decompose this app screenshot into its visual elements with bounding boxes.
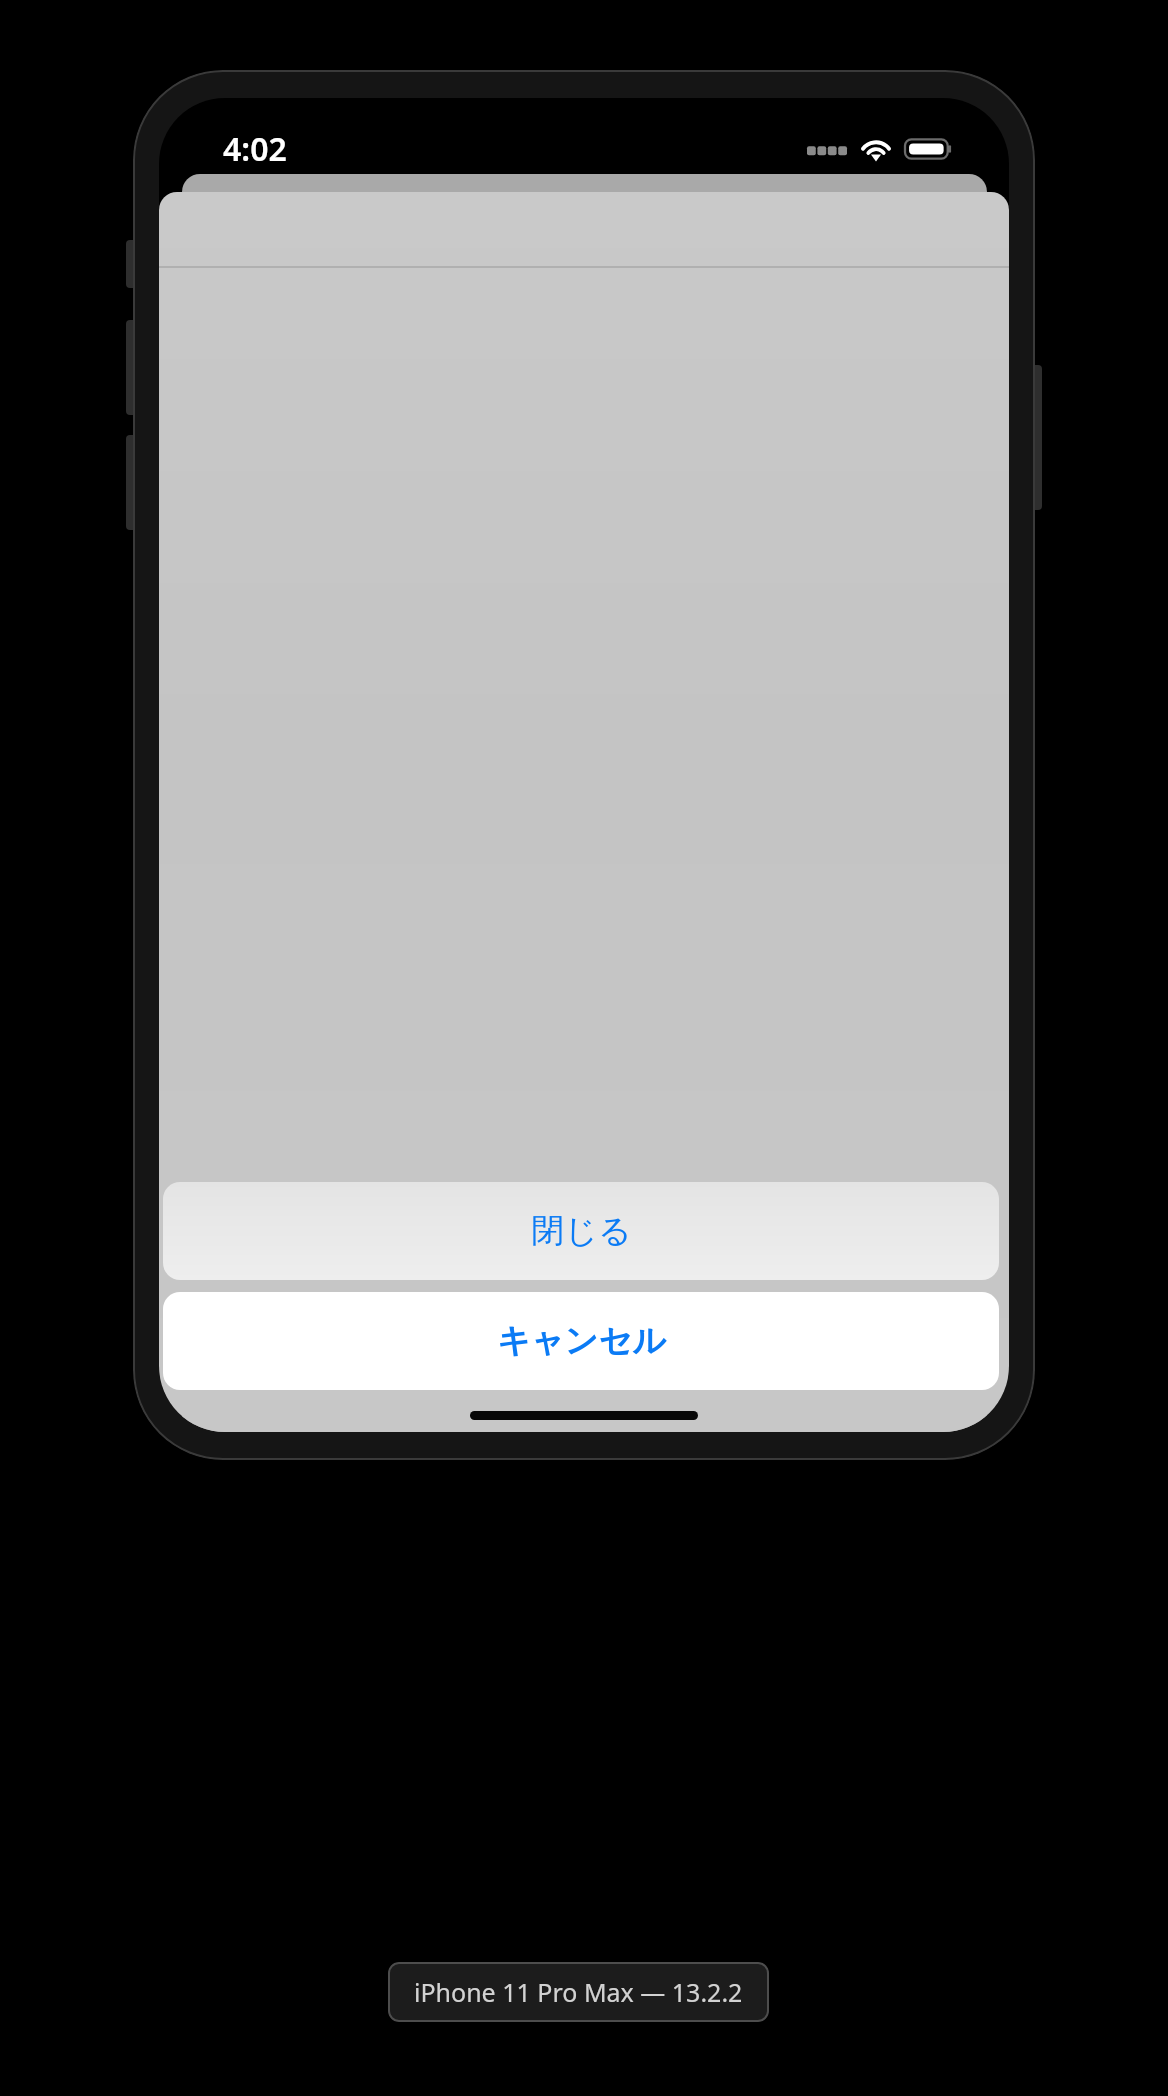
- staticText: キャンセル: [497, 1320, 666, 1362]
- other: Battery: [905, 137, 953, 161]
- button[interactable]: 閉じる: [163, 1182, 999, 1280]
- staticText: iPhone 11 Pro Max — 13.2.2: [414, 1975, 743, 2009]
- other: Wi-Fi: [858, 136, 894, 162]
- button[interactable]: キャンセル: [163, 1292, 999, 1390]
- staticText: 閉じる: [531, 1210, 632, 1252]
- staticText: 4:02: [223, 127, 287, 171]
